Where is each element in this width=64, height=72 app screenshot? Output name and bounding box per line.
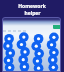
staticText: Homework: [18, 3, 46, 10]
staticText: helper: [24, 10, 41, 17]
button[interactable]: [53, 25, 61, 29]
